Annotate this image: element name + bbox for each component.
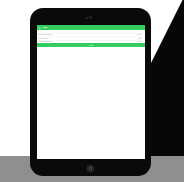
button[interactable]: Model no.: [37, 37, 145, 40]
staticText: Model no.: [38, 37, 49, 40]
button[interactable]: Home: [86, 164, 95, 173]
button[interactable]: Back: [37, 25, 145, 30]
staticText: 1.04: [137, 40, 142, 43]
staticText: Firmware ver.: [38, 40, 52, 43]
staticText: SAVE: [89, 44, 94, 47]
button[interactable]: Serial Number: [37, 33, 145, 36]
other: Back: [39, 27, 41, 29]
button[interactable]: SAVE: [37, 43, 145, 47]
staticText: Serial Number: [38, 33, 53, 36]
staticText: Info: [43, 26, 48, 29]
button[interactable]: Firmware ver.: [37, 40, 145, 43]
staticText: AB-1: [137, 33, 142, 36]
staticText: X20: [138, 37, 142, 40]
